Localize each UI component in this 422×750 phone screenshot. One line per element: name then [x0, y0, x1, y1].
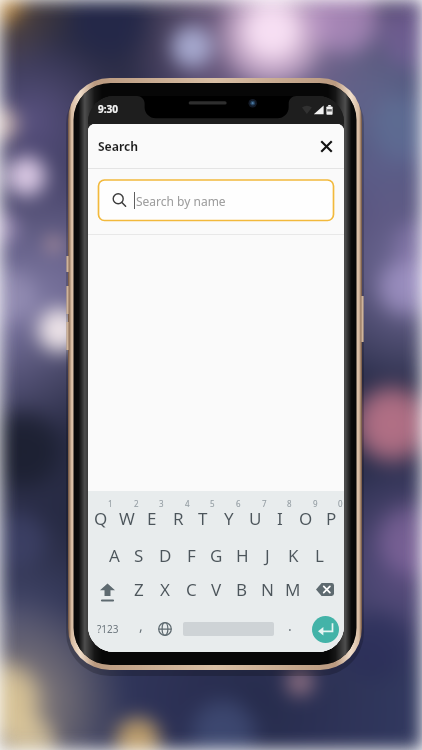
button[interactable]: P: [318, 494, 344, 536]
staticText: S: [134, 544, 144, 567]
staticText: K: [288, 544, 299, 567]
button[interactable]: Close: [312, 132, 340, 160]
staticText: G: [210, 544, 223, 567]
button[interactable]: T: [190, 494, 216, 536]
staticText: 7: [262, 498, 267, 509]
button[interactable]: I: [267, 494, 293, 536]
staticText: E: [147, 507, 157, 530]
button[interactable]: Search by name: [99, 180, 334, 221]
staticText: 5: [210, 498, 215, 509]
button[interactable]: C: [178, 571, 204, 607]
staticText: A: [109, 544, 120, 567]
button[interactable]: M: [280, 571, 306, 607]
button[interactable]: Z: [126, 571, 152, 607]
staticText: D: [159, 544, 172, 567]
staticText: 9:30: [98, 102, 118, 116]
button[interactable]: D: [152, 537, 178, 573]
button[interactable]: O: [293, 494, 319, 536]
button[interactable]: F: [178, 537, 204, 573]
staticText: B: [236, 578, 248, 601]
button[interactable]: X: [152, 571, 178, 607]
staticText: J: [265, 544, 270, 567]
staticText: O: [299, 507, 313, 530]
staticText: F: [187, 544, 196, 567]
staticText: H: [236, 544, 249, 567]
button[interactable]: Q: [88, 494, 114, 536]
staticText: T: [198, 507, 208, 530]
staticText: P: [326, 507, 337, 530]
button[interactable]: A: [101, 537, 127, 573]
staticText: .: [288, 616, 292, 635]
button[interactable]: J: [254, 537, 280, 573]
button[interactable]: Enter: [304, 609, 344, 649]
button[interactable]: N: [254, 571, 280, 607]
button[interactable]: Backspace: [306, 571, 344, 607]
staticText: C: [186, 578, 197, 601]
staticText: 8: [287, 498, 292, 509]
button[interactable]: Y: [216, 494, 242, 536]
staticText: Z: [134, 578, 144, 601]
button[interactable]: Space: [178, 609, 279, 649]
staticText: W: [119, 507, 135, 530]
staticText: Search: [98, 138, 139, 154]
staticText: U: [249, 507, 262, 530]
button[interactable]: B: [229, 571, 255, 607]
button[interactable]: W: [114, 494, 140, 536]
button[interactable]: H: [229, 537, 255, 573]
button[interactable]: ,: [128, 609, 154, 649]
staticText: ?123: [97, 622, 119, 636]
staticText: 9: [313, 498, 318, 509]
staticText: Search by name: [136, 193, 226, 209]
button[interactable]: L: [306, 537, 332, 573]
staticText: 0: [338, 498, 343, 509]
button[interactable]: S: [126, 537, 152, 573]
staticText: M: [285, 578, 301, 601]
button[interactable]: Change language: [152, 609, 178, 649]
staticText: I: [277, 507, 283, 530]
button[interactable]: ?123: [88, 609, 126, 649]
staticText: L: [315, 544, 324, 567]
staticText: ,: [139, 616, 143, 635]
button[interactable]: G: [203, 537, 229, 573]
staticText: 3: [159, 498, 164, 509]
staticText: Y: [224, 507, 234, 530]
button[interactable]: R: [165, 494, 191, 536]
button[interactable]: .: [279, 609, 301, 649]
button[interactable]: Shift: [88, 571, 126, 607]
button[interactable]: E: [139, 494, 165, 536]
button[interactable]: K: [280, 537, 306, 573]
staticText: 2: [134, 498, 139, 509]
staticText: Q: [94, 507, 108, 530]
staticText: R: [173, 507, 184, 530]
staticText: 6: [236, 498, 241, 509]
staticText: N: [261, 578, 274, 601]
staticText: V: [211, 578, 222, 601]
button[interactable]: U: [242, 494, 268, 536]
staticText: X: [160, 578, 170, 601]
staticText: 4: [185, 498, 190, 509]
staticText: 1: [108, 498, 113, 509]
button[interactable]: V: [203, 571, 229, 607]
